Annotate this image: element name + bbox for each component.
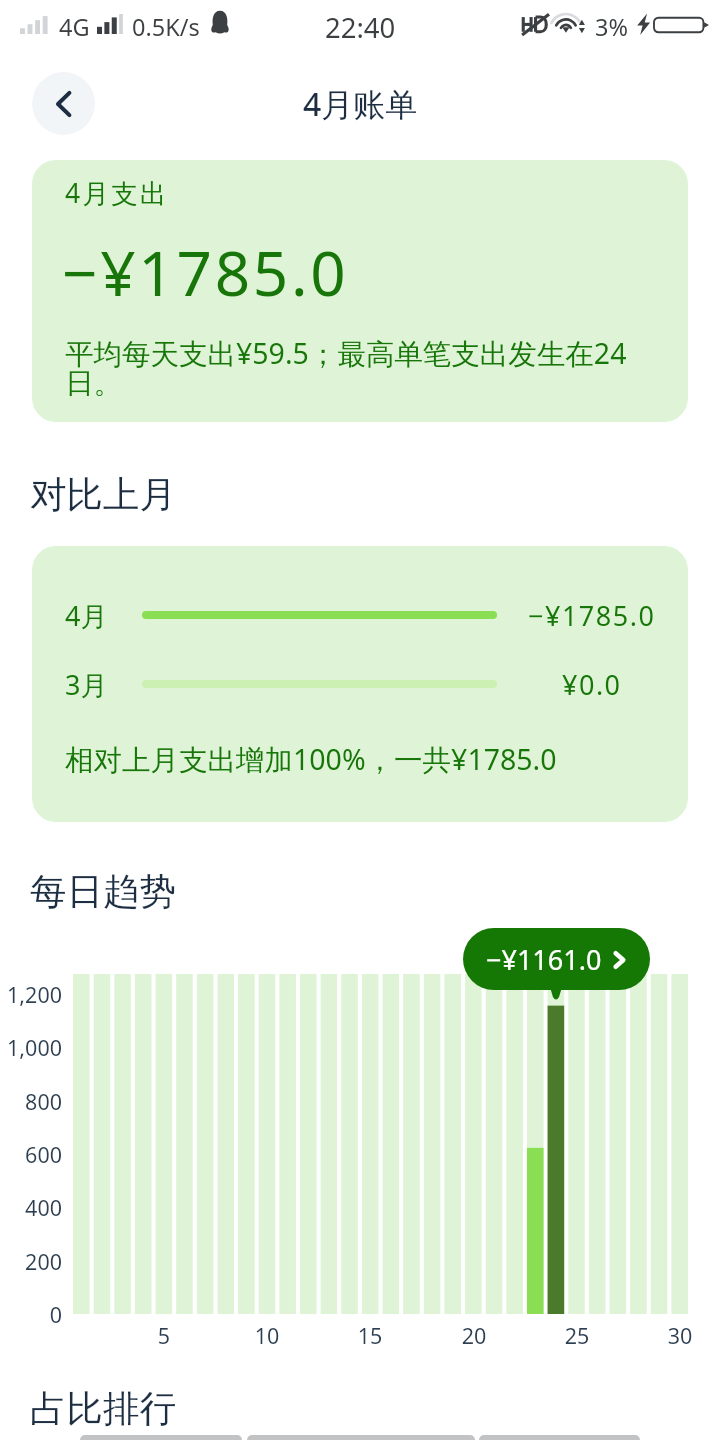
staticText: 1,200 [0,980,62,1009]
staticText: 4月 [65,597,108,634]
staticText: 3月 [65,666,108,703]
staticText: 对比上月 [30,472,176,518]
staticText: 25 [547,1321,607,1350]
button[interactable]: Back [32,72,95,135]
staticText: 400 [0,1193,62,1222]
staticText: 0.5K/s [132,11,200,43]
staticText: 平均每天支出¥59.5；最高单笔支出发生在24日。 [65,334,637,401]
staticText: 1,000 [0,1033,62,1062]
button[interactable]: 4月支出 [32,160,688,422]
staticText: −¥1785.0 [528,597,656,634]
staticText: 800 [0,1087,62,1116]
staticText: 15 [340,1321,400,1350]
staticText: 相对上月支出增加100%，一共¥1785.0 [65,740,557,779]
staticText: 30 [650,1321,710,1350]
staticText: 4G [59,11,90,43]
button[interactable]: 4月 [32,546,688,822]
staticText: 20 [444,1321,504,1350]
staticText: 4月支出 [65,175,169,211]
staticText: −¥1161.0 [486,941,602,978]
staticText: 占比排行 [30,1386,176,1432]
staticText: ¥0.0 [562,666,622,703]
staticText: 600 [0,1140,62,1169]
staticText: −¥1785.0 [62,230,349,314]
staticText: 5 [134,1321,194,1350]
staticText: 22:40 [325,9,396,46]
staticText: 200 [0,1247,62,1276]
staticText: 0 [0,1300,62,1329]
staticText: 3% [595,11,628,43]
staticText: 10 [237,1321,297,1350]
staticText: 每日趋势 [30,869,176,915]
staticText: 4月账单 [303,82,418,126]
button[interactable]: −¥1161.0 [463,928,650,990]
